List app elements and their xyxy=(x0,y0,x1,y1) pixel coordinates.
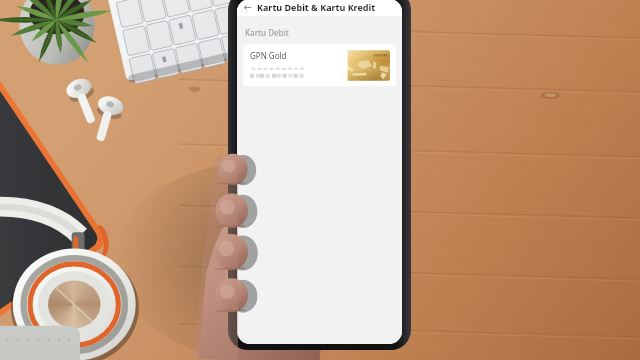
staticText: Kartu Debit xyxy=(245,27,289,38)
button[interactable]: Back xyxy=(237,0,257,16)
staticText: Kartu Debit & Kartu Kredit xyxy=(257,1,376,13)
staticText: GPN Gold xyxy=(250,50,287,61)
button[interactable]: GPN Gold xyxy=(243,44,396,86)
